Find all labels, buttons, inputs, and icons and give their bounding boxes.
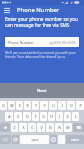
- button[interactable]: Z: [11, 123, 18, 132]
- staticText: X: [22, 125, 25, 130]
- button[interactable]: F: [32, 112, 39, 121]
- staticText: We'll use a contact list to connect you …: [5, 51, 76, 59]
- staticText: T: [35, 103, 37, 108]
- button[interactable]: K: [64, 112, 71, 121]
- button[interactable]: M: [64, 123, 72, 132]
- button[interactable]: .: [58, 135, 65, 144]
- staticText: Next: [37, 88, 47, 94]
- staticText: Y: [43, 103, 46, 108]
- staticText: space: [31, 138, 39, 142]
- button[interactable]: Open navigation menu: [0, 5, 13, 15]
- button[interactable]: B: [46, 123, 54, 132]
- button[interactable]: I: [58, 101, 66, 110]
- staticText: L: [75, 114, 77, 119]
- button[interactable]: O: [67, 101, 75, 110]
- button[interactable]: Y: [40, 101, 48, 110]
- staticText: O: [70, 103, 73, 108]
- button[interactable]: Shift: [0, 123, 10, 132]
- staticText: M: [66, 125, 70, 130]
- button[interactable]: A: [5, 112, 13, 121]
- button[interactable]: J: [56, 112, 63, 121]
- button[interactable]: T: [32, 101, 39, 110]
- staticText: B: [49, 125, 52, 130]
- staticText: Z: [13, 125, 16, 130]
- button[interactable]: C: [28, 123, 36, 132]
- staticText: F: [35, 114, 37, 119]
- button[interactable]: P: [76, 101, 84, 110]
- staticText: C: [31, 125, 34, 130]
- staticText: W: [10, 103, 14, 108]
- staticText: Phone Number: [17, 6, 60, 14]
- staticText: Q: [2, 103, 5, 108]
- button[interactable]: S: [14, 112, 22, 121]
- button[interactable]: return: [66, 135, 84, 144]
- staticText: V: [40, 125, 43, 130]
- staticText: K: [66, 114, 69, 119]
- button[interactable]: D: [23, 112, 31, 121]
- staticText: Phone Number: [8, 40, 34, 45]
- staticText: P: [79, 103, 82, 108]
- button[interactable]: Next: [31, 86, 53, 96]
- button[interactable]: Symbols: [0, 135, 11, 144]
- staticText: U: [52, 103, 55, 108]
- button[interactable]: Settings: [50, 135, 57, 144]
- staticText: S: [17, 114, 19, 119]
- button[interactable]: X: [19, 123, 27, 132]
- staticText: A: [8, 114, 11, 119]
- button[interactable]: L: [72, 112, 79, 121]
- staticText: D: [26, 114, 29, 119]
- staticText: G: [42, 114, 45, 119]
- button[interactable]: Q: [0, 101, 7, 110]
- button[interactable]: W: [8, 101, 15, 110]
- staticText: return: [71, 138, 79, 142]
- staticText: Enter your phone number so you can messa…: [5, 16, 78, 28]
- staticText: E: [19, 103, 21, 108]
- staticText: N: [58, 125, 61, 130]
- staticText: R: [26, 103, 29, 108]
- staticText: .: [61, 137, 62, 142]
- staticText: H: [50, 114, 53, 119]
- staticText: J: [59, 114, 60, 119]
- button[interactable]: U: [49, 101, 57, 110]
- button[interactable]: H: [48, 112, 55, 121]
- button[interactable]: Phone Number: [5, 37, 79, 47]
- button[interactable]: G: [40, 112, 47, 121]
- button[interactable]: R: [24, 101, 31, 110]
- button[interactable]: space: [20, 135, 49, 144]
- button[interactable]: N: [55, 123, 63, 132]
- button[interactable]: Change language: [12, 135, 19, 144]
- button[interactable]: E: [16, 101, 23, 110]
- button[interactable]: Backspace: [73, 123, 84, 132]
- staticText: I: [61, 103, 63, 108]
- staticText: eg (555) 555-5555: [49, 41, 76, 45]
- button[interactable]: V: [37, 123, 45, 132]
